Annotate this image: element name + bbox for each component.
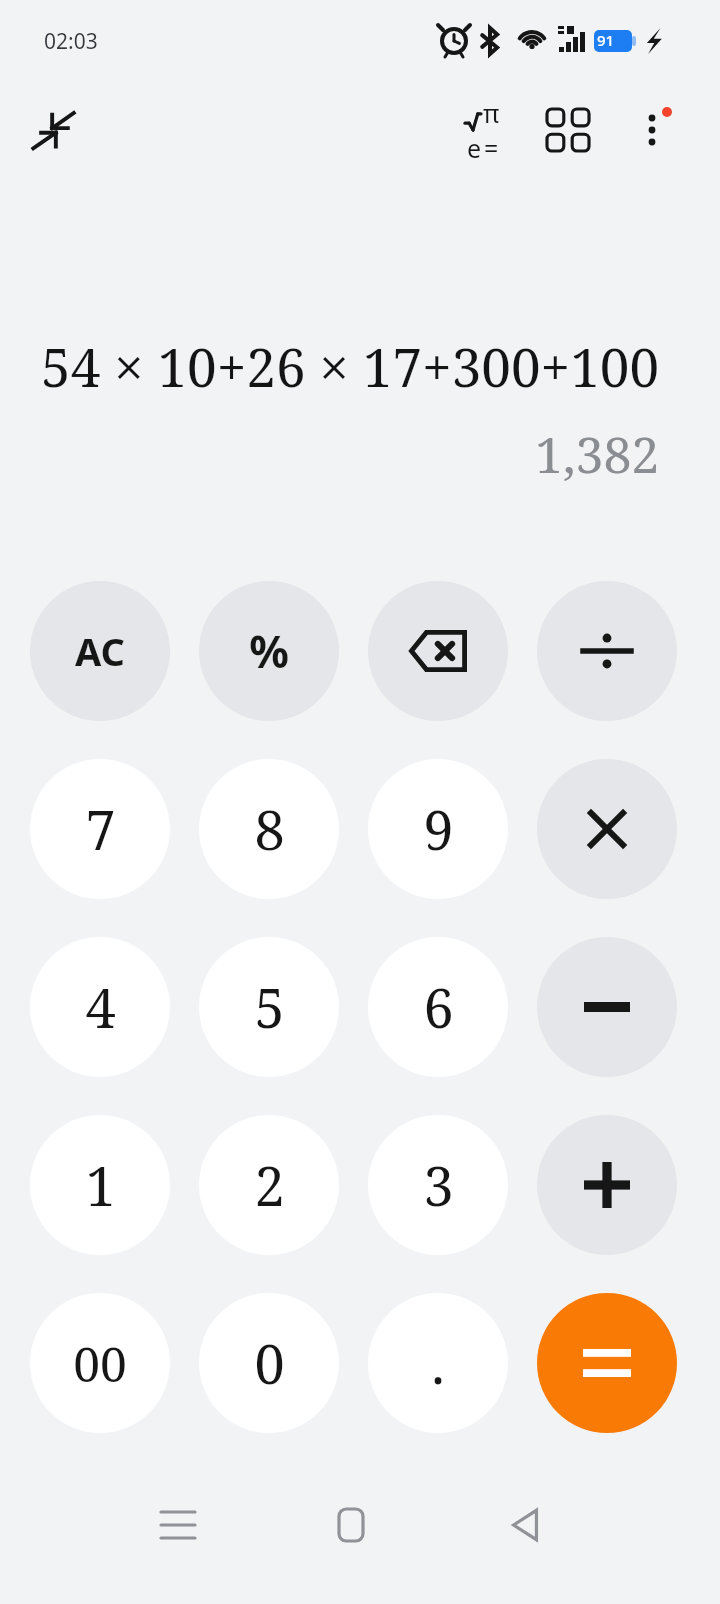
button[interactable]: 4 xyxy=(30,937,170,1077)
staticText: 3 xyxy=(423,1148,454,1222)
staticText: 2 xyxy=(254,1148,285,1222)
staticText: 54 × 10+26 × 17+300+100 xyxy=(41,330,660,402)
staticText: 7 xyxy=(85,792,116,866)
staticText: 4 xyxy=(85,970,116,1044)
staticText: 6 xyxy=(423,970,454,1044)
staticText: 00 xyxy=(73,1331,127,1396)
staticText: AC xyxy=(75,625,125,677)
button[interactable]: 7 xyxy=(30,759,170,899)
button[interactable]: More options xyxy=(614,92,690,168)
button[interactable]: 1 xyxy=(30,1115,170,1255)
button[interactable]: Plus xyxy=(537,1115,677,1255)
staticText: . xyxy=(431,1326,445,1400)
staticText: 5 xyxy=(254,970,285,1044)
button[interactable]: Back xyxy=(485,1485,565,1565)
staticText: 1,382 xyxy=(535,420,660,488)
button[interactable]: Collapse xyxy=(14,90,94,170)
staticText: 1 xyxy=(85,1148,116,1222)
button[interactable]: AC xyxy=(30,581,170,721)
staticText: π xyxy=(483,96,500,130)
button[interactable]: 6 xyxy=(368,937,508,1077)
button[interactable]: 3 xyxy=(368,1115,508,1255)
button[interactable]: . xyxy=(368,1293,508,1433)
button[interactable]: 00 xyxy=(30,1293,170,1433)
staticText: = xyxy=(484,131,499,165)
button[interactable]: Minus xyxy=(537,937,677,1077)
staticText: 91 xyxy=(597,30,615,50)
button[interactable]: 8 xyxy=(199,759,339,899)
button[interactable]: Multiply xyxy=(537,759,677,899)
button[interactable]: % xyxy=(199,581,339,721)
staticText: % xyxy=(249,621,289,681)
staticText: 8 xyxy=(254,792,285,866)
button[interactable]: History xyxy=(530,92,606,168)
staticText: 0 xyxy=(254,1326,285,1400)
button[interactable]: 0 xyxy=(199,1293,339,1433)
button[interactable]: Home xyxy=(311,1485,391,1565)
button[interactable]: Equals xyxy=(537,1293,677,1433)
button[interactable]: Scientific mode xyxy=(444,92,520,168)
button[interactable]: Backspace xyxy=(368,581,508,721)
button[interactable]: 5 xyxy=(199,937,339,1077)
staticText: 02:03 xyxy=(44,27,98,56)
button[interactable]: Recents xyxy=(138,1485,218,1565)
button[interactable]: 9 xyxy=(368,759,508,899)
staticText: 9 xyxy=(423,792,454,866)
button[interactable]: Divide xyxy=(537,581,677,721)
button[interactable]: 2 xyxy=(199,1115,339,1255)
staticText: e xyxy=(467,131,482,165)
